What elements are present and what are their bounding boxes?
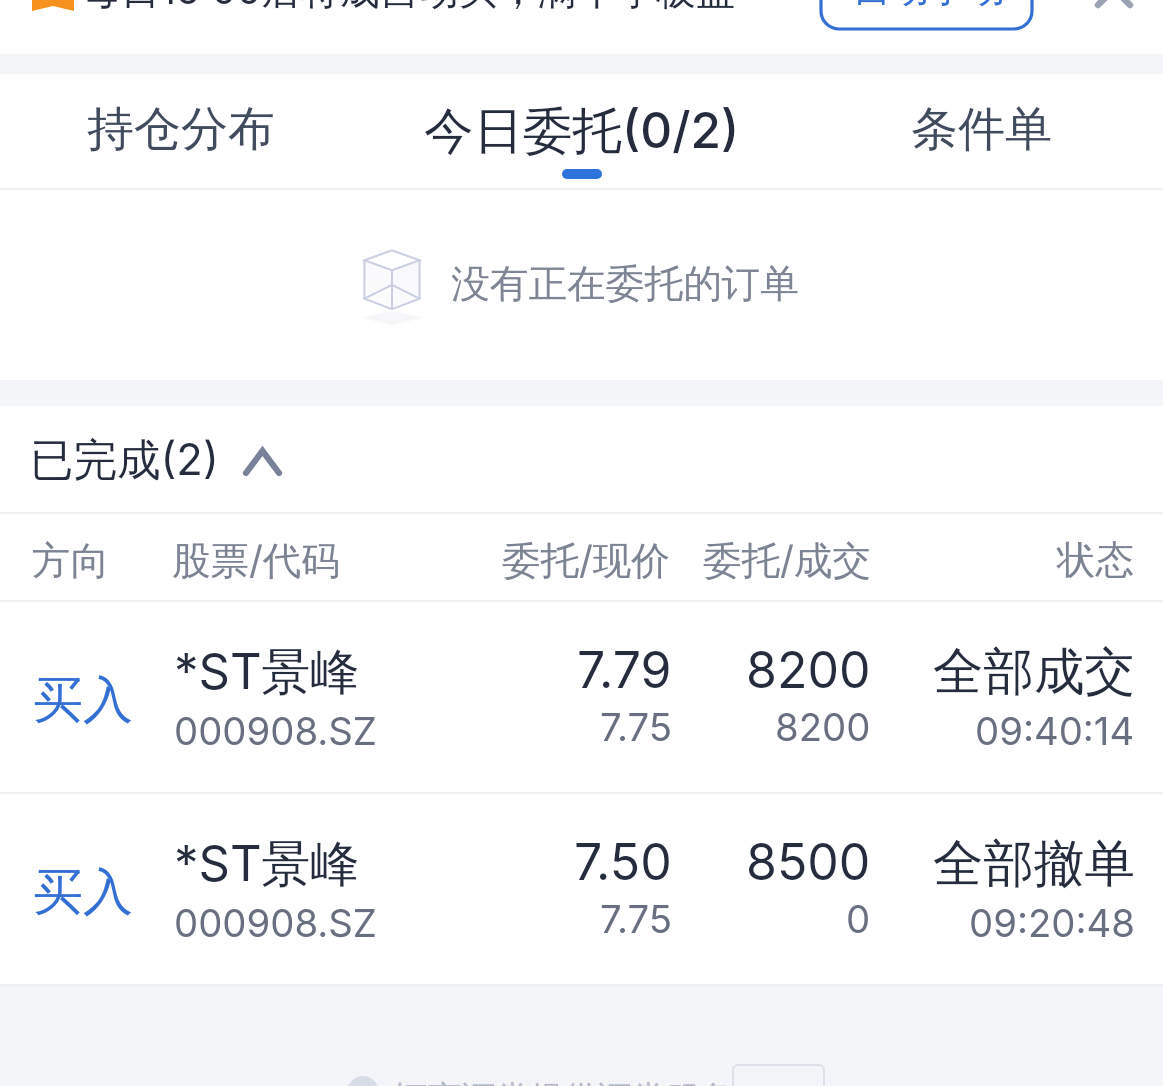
staticText: 恒亨证券提供证券服务 [394,1077,734,1086]
button[interactable]: 买入 [0,794,1163,984]
button[interactable]: 今日委托(0/2) [398,74,765,188]
staticText: 0 [846,896,871,942]
staticText: 委托/成交 [703,537,871,586]
staticText: 条件单 [911,100,1052,159]
staticText: 全部撤单 [933,832,1135,896]
staticText: 8200 [775,704,871,750]
staticText: 7.75 [600,704,672,750]
staticText: 今日委托(0/2) [424,100,740,163]
staticText: 委托/现价 [502,537,670,586]
staticText: 8500 [746,832,871,892]
staticText: 股票/代码 [172,537,340,586]
staticText: 没有正在委托的订单 [451,260,800,309]
staticText: 买入 [33,669,133,732]
staticText: 09:20:48 [969,900,1135,946]
staticText: *ST景峰 [174,642,360,704]
staticText: 持仓分布 [87,100,275,159]
staticText: 000908.SZ [174,900,377,946]
button[interactable]: 买入 [0,602,1163,792]
staticText: 方向 [32,537,109,586]
staticText: 000908.SZ [174,708,377,754]
other: Collapse [243,448,282,476]
staticText: 状态 [1057,536,1134,585]
button[interactable]: 持仓分布 [0,74,362,188]
button[interactable]: 条件单 [800,74,1163,188]
staticText: 已完成(2) [30,433,219,488]
staticText: 7.75 [600,896,672,942]
button[interactable]: 已完成(2) [0,406,1163,512]
staticText: 7.79 [577,640,672,700]
staticText: 7.50 [574,832,672,892]
staticText: 09:40:14 [975,708,1135,754]
staticText: *ST景峰 [174,834,360,896]
staticText: 全部成交 [933,640,1135,704]
staticText: 自动手动 [853,0,1005,12]
staticText: 买入 [33,861,133,924]
staticText: 每日15:00后将成自动买，满个季板盐 [81,0,736,16]
button[interactable]: Close [1095,0,1133,8]
staticText: 8200 [746,640,871,700]
button[interactable]: 自动手动 [0,0,1163,54]
